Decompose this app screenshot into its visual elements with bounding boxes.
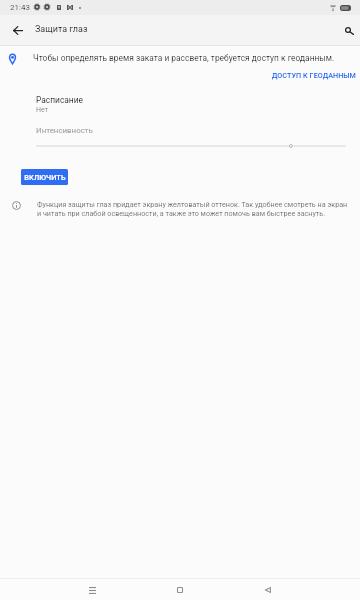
staticText: Функция защиты глаз придает экрану желто… bbox=[37, 200, 352, 218]
staticText: ВКЛЮЧИТЬ bbox=[24, 173, 66, 182]
staticText: Защита глаз bbox=[35, 24, 88, 35]
staticText: Расписание bbox=[36, 95, 83, 105]
staticText: Нет bbox=[36, 106, 49, 114]
button[interactable]: Search bbox=[330, 15, 360, 46]
button[interactable]: Recent apps bbox=[72, 578, 112, 600]
staticText: Чтобы определять время заката и рассвета… bbox=[33, 53, 335, 63]
button[interactable]: ДОСТУП К ГЕОДАННЫМ bbox=[262, 68, 360, 82]
staticText: ДОСТУП К ГЕОДАННЫМ bbox=[272, 71, 356, 79]
button[interactable]: Intensity slider bbox=[0, 141, 360, 151]
button[interactable]: ВКЛЮЧИТЬ bbox=[21, 169, 68, 185]
button[interactable]: Расписание bbox=[0, 94, 360, 116]
staticText: Интенсивность bbox=[36, 126, 93, 135]
staticText: 21:43 bbox=[10, 3, 30, 12]
button[interactable]: Back bbox=[248, 578, 288, 600]
button[interactable]: Back bbox=[1, 15, 35, 46]
button[interactable]: Home bbox=[160, 578, 200, 600]
